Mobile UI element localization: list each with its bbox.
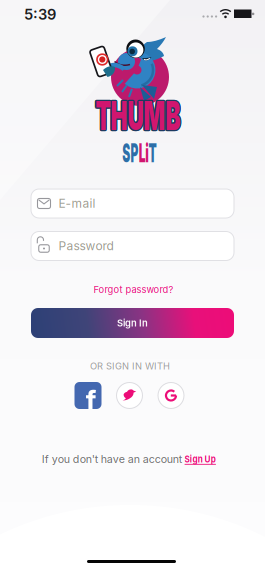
staticText: Forgot password?: [93, 284, 173, 295]
staticText: THUMB: [96, 103, 181, 129]
staticText: THUMB: [95, 103, 180, 129]
staticText: OR SIGN IN WITH: [90, 360, 170, 371]
button[interactable]: Sign Up: [182, 453, 218, 464]
staticText: THUMB: [94, 102, 179, 129]
button[interactable]: Sign In: [31, 308, 234, 338]
button[interactable]: Sign in with Google: [157, 382, 184, 409]
staticText: Li: [138, 144, 150, 162]
staticText: THUMB: [97, 102, 182, 129]
button[interactable]: Forgot password?: [93, 284, 173, 295]
staticText: If you don't have an account: [42, 453, 182, 465]
textField[interactable]: E-mail: [58, 196, 234, 211]
staticText: THUMB: [95, 101, 180, 128]
staticText: THUMB: [96, 101, 181, 128]
staticText: T: [150, 144, 160, 162]
staticText: 5:39: [24, 6, 56, 23]
button[interactable]: Sign in with Twitter: [116, 382, 143, 409]
staticText: SP: [118, 144, 138, 162]
staticText: Sign Up: [182, 453, 218, 464]
staticText: THUMB: [95, 101, 180, 128]
staticText: Password: [58, 239, 113, 253]
staticText: E-mail: [58, 196, 95, 211]
secureTextField[interactable]: Password: [58, 239, 234, 253]
staticText: THUMB: [95, 102, 180, 129]
staticText: Sign In: [117, 317, 148, 328]
button[interactable]: Sign in with Facebook: [74, 382, 101, 409]
staticText: f: [85, 383, 96, 416]
staticText: THUMB: [95, 103, 180, 129]
